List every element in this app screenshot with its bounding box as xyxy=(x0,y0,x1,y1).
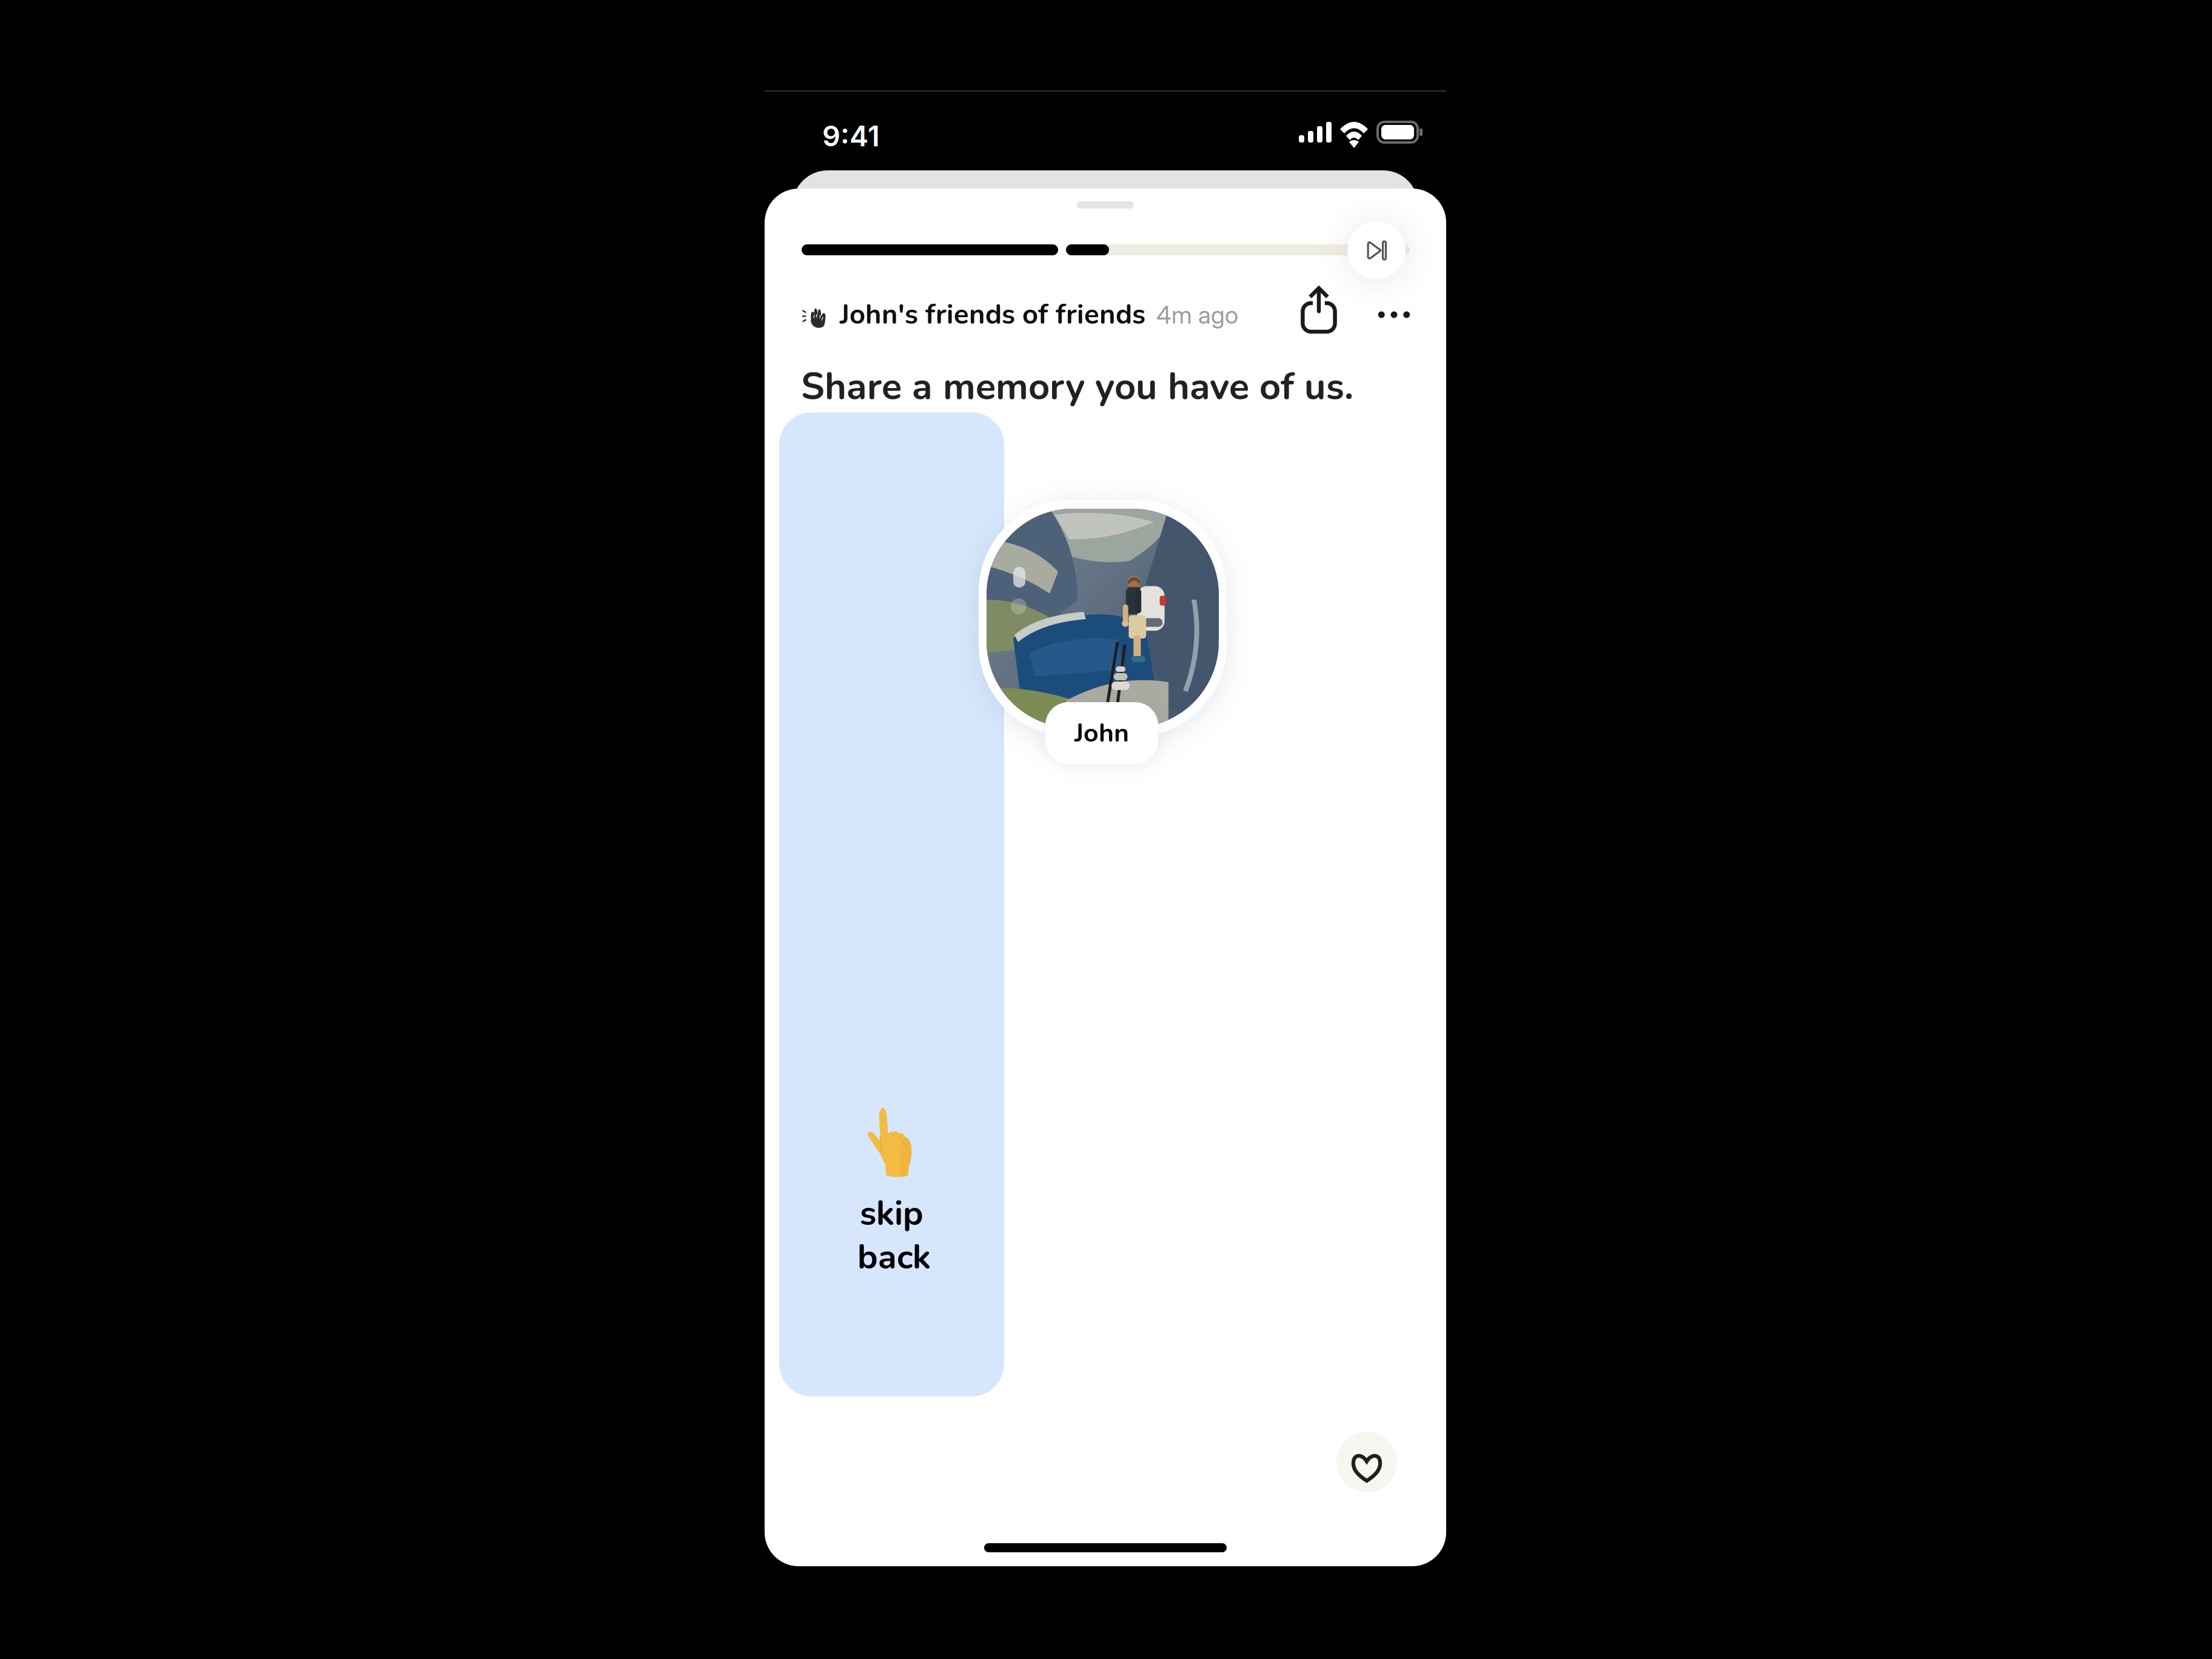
staticText: Share a memory you have of us. xyxy=(801,361,1353,412)
button[interactable]: Share xyxy=(1296,286,1342,332)
staticText: back xyxy=(857,1234,931,1280)
staticText: skip xyxy=(860,1190,923,1237)
button[interactable]: John's memory xyxy=(979,493,1227,778)
staticText: John xyxy=(1074,715,1129,751)
staticText: 4m ago xyxy=(1156,300,1238,329)
staticText: John's friends of friends xyxy=(840,296,1145,333)
staticText: 9:41 xyxy=(822,119,880,153)
button[interactable]: Like xyxy=(1336,1432,1397,1492)
button[interactable]: skip xyxy=(779,412,1004,1396)
button[interactable]: More options xyxy=(1373,294,1415,335)
button[interactable]: Skip forward xyxy=(1347,221,1406,280)
